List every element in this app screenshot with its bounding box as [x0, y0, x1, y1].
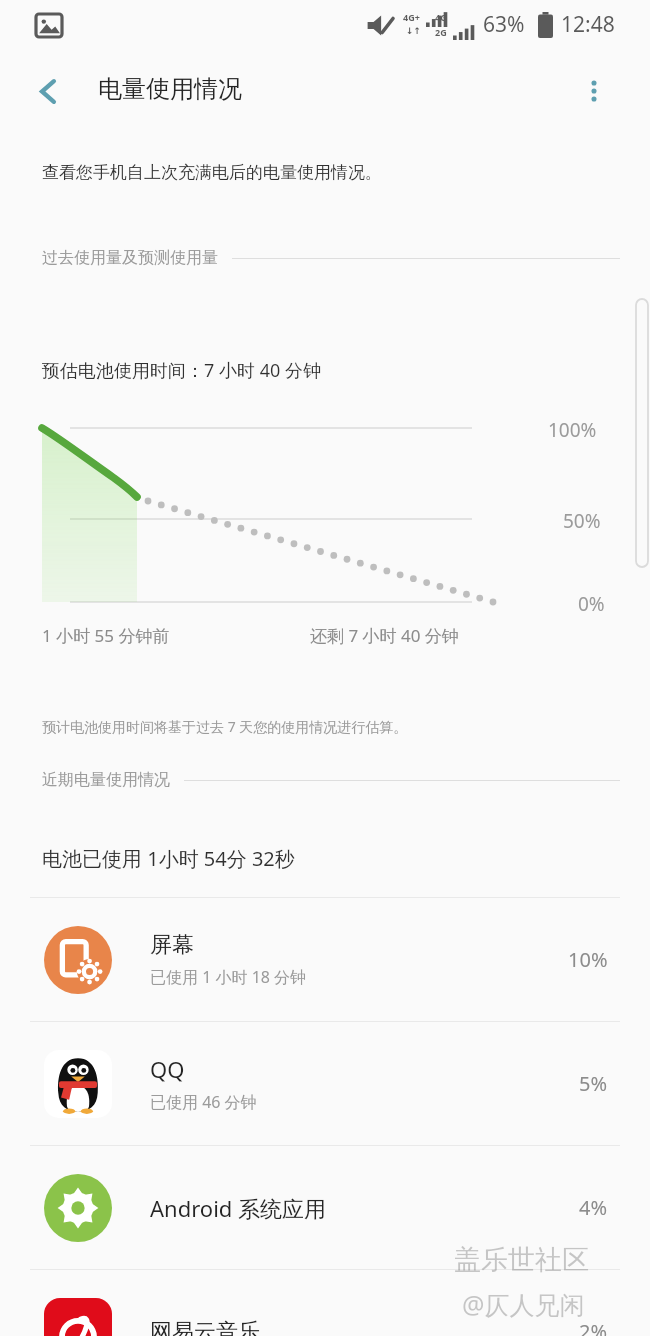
staticText: 近期电量使用情况 [42, 770, 170, 790]
staticText: 查看您手机自上次充满电后的电量使用情况。 [42, 162, 382, 183]
staticText: 0% [578, 591, 605, 617]
button[interactable]: Android 系统应用 [0, 1146, 650, 1269]
staticText: @仄人兄闲 [462, 1287, 585, 1321]
staticText: 50% [563, 508, 601, 534]
staticText: 4% [579, 1194, 608, 1221]
staticText: 12:48 [561, 10, 615, 39]
button[interactable]: More options [568, 65, 620, 117]
staticText: Android 系统应用 [150, 1193, 327, 1223]
staticText: 100% [548, 417, 597, 443]
staticText: 已使用 1 小时 18 分钟 [150, 966, 307, 988]
staticText: 63% [483, 10, 525, 39]
button[interactable]: 网易云音乐 [0, 1270, 650, 1336]
button[interactable]: 屏幕 [0, 898, 650, 1021]
staticText: ↓↑ [406, 26, 422, 36]
button[interactable]: QQ [0, 1022, 650, 1145]
staticText: 预估电池使用时间：7 小时 40 分钟 [42, 358, 321, 383]
staticText: 过去使用量及预测使用量 [42, 248, 218, 268]
staticText: 预计电池使用时间将基于过去 7 天您的使用情况进行估算。 [42, 717, 408, 736]
staticText: 电量使用情况 [98, 74, 242, 104]
staticText: 4G+ [403, 11, 420, 23]
staticText: 10% [568, 946, 608, 973]
staticText: 1 小时 55 分钟前 [42, 624, 170, 647]
staticText: 还剩 7 小时 40 分钟 [310, 624, 459, 647]
staticText: 4G [435, 11, 447, 23]
button[interactable]: Back [22, 65, 74, 117]
staticText: 2G [435, 26, 447, 38]
staticText: 电池已使用 1小时 54分 32秒 [42, 845, 295, 872]
staticText: 网易云音乐 [150, 1318, 260, 1336]
staticText: 2% [579, 1318, 608, 1336]
staticText: QQ [150, 1054, 185, 1084]
staticText: 5% [579, 1070, 608, 1097]
staticText: 屏幕 [150, 931, 194, 959]
staticText: 盖乐世社区 [454, 1243, 589, 1277]
staticText: 已使用 46 分钟 [150, 1091, 257, 1113]
